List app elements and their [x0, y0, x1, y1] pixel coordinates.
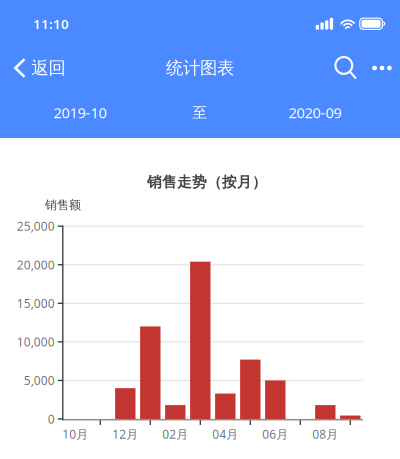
- staticText: 销售走势（按月）: [147, 173, 267, 191]
- button[interactable]: 至: [170, 95, 230, 129]
- staticText: 12月: [112, 426, 138, 442]
- staticText: 2020-09: [288, 103, 341, 122]
- staticText: 销售额: [45, 198, 81, 212]
- staticText: 至: [192, 103, 207, 121]
- staticText: 08月: [312, 426, 338, 442]
- staticText: 统计图表: [166, 57, 234, 79]
- staticText: 04月: [212, 426, 238, 442]
- button[interactable]: More: [364, 47, 400, 89]
- staticText: 2019-10: [53, 103, 106, 122]
- staticText: 15,000: [17, 295, 55, 311]
- button[interactable]: Search: [328, 47, 364, 89]
- staticText: 返回: [32, 57, 66, 79]
- staticText: 10,000: [17, 334, 55, 350]
- button[interactable]: 返回: [0, 47, 76, 89]
- staticText: 02月: [162, 426, 188, 442]
- staticText: 20,000: [17, 257, 55, 273]
- staticText: 10月: [62, 426, 88, 442]
- staticText: 06月: [262, 426, 288, 442]
- staticText: 11:10: [33, 15, 69, 33]
- button[interactable]: 2019-10: [25, 95, 135, 129]
- staticText: 25,000: [17, 218, 55, 234]
- staticText: 0: [48, 411, 55, 427]
- button[interactable]: 2020-09: [260, 95, 370, 129]
- staticText: 5,000: [24, 372, 55, 388]
